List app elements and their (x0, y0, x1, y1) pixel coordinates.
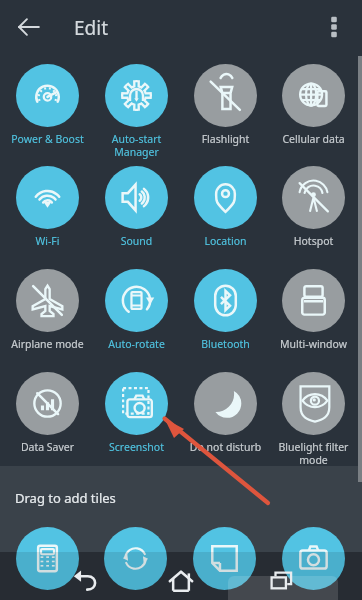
staticText: Sound (92, 234, 181, 248)
button[interactable]: Auto-start Manager (92, 64, 181, 154)
staticText: Auto-start Manager (92, 132, 181, 159)
staticText: Screenshot (92, 440, 181, 454)
button[interactable]: Bluetooth (181, 269, 270, 359)
staticText: Data Saver (3, 440, 92, 454)
button[interactable]: Hotspot (269, 166, 358, 256)
button[interactable]: Screenshot (92, 372, 181, 462)
staticText: Do not disturb (181, 440, 270, 454)
staticText: Auto-rotate (92, 337, 181, 351)
button[interactable]: Calculator (16, 527, 79, 590)
staticText: Bluetooth (181, 337, 270, 351)
button[interactable]: Do not disturb (181, 372, 270, 462)
button[interactable]: Back (71, 565, 99, 593)
button[interactable]: Notes (193, 527, 256, 590)
button[interactable]: Cellular data (269, 64, 358, 154)
staticText: Flashlight (181, 132, 270, 146)
staticText: Cellular data (269, 132, 358, 146)
button[interactable]: Sound (92, 166, 181, 256)
button[interactable]: Camera (282, 527, 345, 590)
button[interactable]: Location (181, 166, 270, 256)
staticText: Airplane mode (3, 337, 92, 351)
staticText: Wi-Fi (3, 234, 92, 248)
button[interactable]: Bluelight filter mode (269, 372, 358, 462)
staticText: Power & Boost (3, 132, 92, 146)
staticText: Bluelight filter mode (269, 440, 358, 467)
staticText: Drag to add tiles (15, 489, 116, 507)
button[interactable]: Recent apps (269, 567, 295, 593)
staticText: Multi-window (269, 337, 358, 351)
button[interactable]: Data Saver (3, 372, 92, 462)
staticText: Edit (74, 15, 109, 41)
staticText: Location (181, 234, 270, 248)
button[interactable]: Multi-window (269, 269, 358, 359)
button[interactable]: More options (320, 13, 348, 41)
staticText: Hotspot (269, 234, 358, 248)
button[interactable]: Flashlight (181, 64, 270, 154)
button[interactable]: Airplane mode (3, 269, 92, 359)
button[interactable]: Auto-rotate (92, 269, 181, 359)
button[interactable]: Back (16, 14, 42, 40)
button[interactable]: Wi-Fi (3, 166, 92, 256)
button[interactable]: Home (167, 565, 195, 593)
button[interactable]: Power & Boost (3, 64, 92, 154)
button[interactable]: Sync (104, 527, 167, 590)
